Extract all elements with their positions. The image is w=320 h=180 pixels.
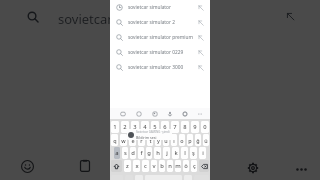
button[interactable]: 0: [201, 121, 209, 133]
button[interactable]: More options: [291, 159, 311, 179]
button[interactable]: u: [163, 134, 169, 146]
button[interactable]: More: [194, 108, 205, 119]
button[interactable]: 6: [161, 121, 169, 133]
button[interactable]: 1: [111, 121, 119, 133]
button[interactable]: m: [175, 160, 181, 172]
staticText: ü: [204, 137, 208, 144]
button[interactable]: j: [163, 147, 170, 159]
button[interactable]: e: [129, 134, 136, 146]
staticText: i: [202, 149, 204, 157]
button[interactable]: Emoji: [17, 156, 37, 176]
button[interactable]: sovietcar simulator 3000: [110, 60, 210, 75]
button[interactable]: d: [130, 147, 136, 159]
button[interactable]: ğ: [195, 134, 201, 146]
button[interactable]: 9: [191, 121, 199, 133]
staticText: g: [147, 149, 151, 157]
button[interactable]: Insert suggestion: [284, 10, 296, 22]
staticText: j: [166, 149, 168, 157]
button[interactable]: Settings: [243, 158, 263, 178]
staticText: sovietcar simulator 2: [128, 19, 198, 26]
staticText: ğ: [196, 137, 200, 144]
button[interactable]: Backspace: [199, 160, 209, 172]
button[interactable]: Shift: [111, 160, 122, 172]
button[interactable]: x: [133, 160, 140, 172]
staticText: n: [168, 162, 172, 170]
button[interactable]: Clipboard: [75, 156, 95, 176]
staticText: v: [152, 162, 156, 170]
button[interactable]: Voice: [164, 108, 175, 119]
staticText: sovietcar simulator 0229: [128, 49, 198, 56]
staticText: Sovietcar GAMING · şimdi: [136, 130, 170, 134]
button[interactable]: sovietcar simulator 0229: [110, 45, 210, 60]
button[interactable]: c: [142, 160, 149, 172]
button[interactable]: 3: [131, 121, 139, 133]
staticText: d: [131, 149, 135, 157]
staticText: sovietcar simulator premium: [128, 34, 198, 41]
staticText: h: [156, 149, 160, 157]
staticText: 6: [163, 123, 167, 131]
staticText: 4: [143, 123, 147, 131]
staticText: p: [188, 137, 192, 144]
button[interactable]: w: [120, 134, 127, 146]
button[interactable]: q: [111, 134, 118, 146]
button[interactable]: Settings: [179, 108, 190, 119]
button[interactable]: z: [124, 160, 131, 172]
button[interactable]: ç: [191, 160, 197, 172]
staticText: 0: [203, 123, 207, 131]
button[interactable]: sovietcar simulator premium: [110, 30, 210, 45]
button[interactable]: y: [155, 134, 161, 146]
button[interactable]: Sovietcar GAMING · şimdi: [127, 129, 172, 140]
staticText: 9: [193, 123, 197, 131]
button[interactable]: 4: [141, 121, 149, 133]
staticText: m: [175, 162, 181, 170]
staticText: e: [131, 137, 135, 144]
staticText: c: [144, 162, 147, 170]
button[interactable]: sovietcar simulator: [110, 0, 210, 15]
staticText: ç: [193, 162, 196, 170]
staticText: Bildirim sesi: [136, 135, 157, 140]
button[interactable]: ö: [183, 160, 189, 172]
button[interactable]: n: [167, 160, 173, 172]
button[interactable]: ı: [171, 134, 177, 146]
staticText: sovietcar simulator 3000: [128, 64, 198, 71]
button[interactable]: o: [179, 134, 185, 146]
button[interactable]: p: [187, 134, 193, 146]
button[interactable]: 5: [151, 121, 159, 133]
staticText: 5: [153, 123, 157, 131]
button[interactable]: i: [199, 147, 206, 159]
button[interactable]: h: [154, 147, 161, 159]
button[interactable]: ş: [190, 147, 197, 159]
button[interactable]: 7: [171, 121, 179, 133]
staticText: l: [184, 149, 186, 157]
button[interactable]: 2: [121, 121, 129, 133]
staticText: 3: [133, 123, 137, 131]
button[interactable]: l: [181, 147, 188, 159]
staticText: ş: [192, 149, 195, 157]
button[interactable]: Sticker: [117, 108, 128, 119]
button[interactable]: f: [138, 147, 144, 159]
button[interactable]: a: [114, 147, 120, 159]
button[interactable]: GIF: [133, 108, 144, 119]
staticText: 8: [183, 123, 187, 131]
button[interactable]: k: [172, 147, 179, 159]
staticText: ö: [184, 162, 188, 170]
staticText: s: [124, 149, 127, 157]
button[interactable]: t: [147, 134, 153, 146]
button[interactable]: 8: [181, 121, 189, 133]
button[interactable]: sovietcar simulator 2: [110, 15, 210, 30]
button[interactable]: Theme: [149, 108, 160, 119]
button[interactable]: g: [146, 147, 152, 159]
button[interactable]: ü: [203, 134, 209, 146]
button[interactable]: b: [159, 160, 165, 172]
staticText: f: [140, 149, 143, 157]
button[interactable]: r: [138, 134, 145, 146]
staticText: w: [121, 137, 126, 144]
button[interactable]: v: [151, 160, 157, 172]
button[interactable]: s: [122, 147, 128, 159]
